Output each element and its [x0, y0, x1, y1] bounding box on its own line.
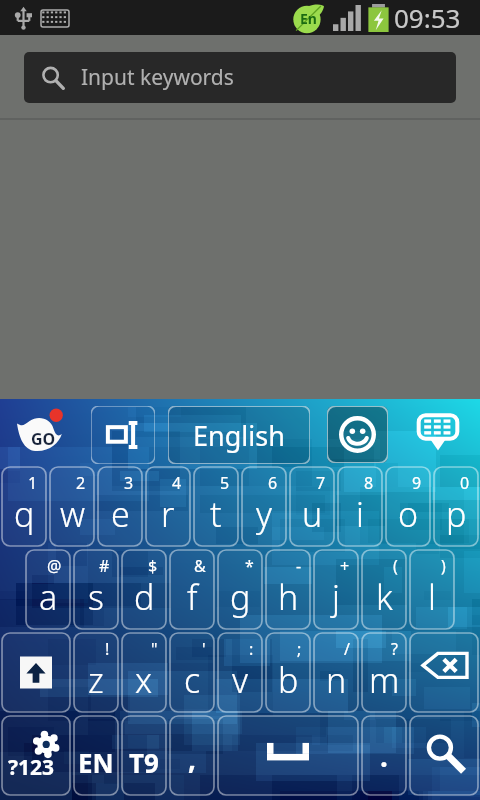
staticText: a — [39, 574, 58, 620]
button[interactable]: English — [168, 406, 310, 464]
button[interactable] — [98, 467, 142, 546]
staticText: : — [249, 638, 254, 660]
button[interactable] — [2, 467, 46, 546]
button[interactable] — [122, 550, 166, 629]
staticText: / — [344, 638, 350, 660]
button[interactable]: Emoji — [327, 406, 388, 463]
staticText: g — [230, 574, 251, 620]
staticText: ) — [441, 555, 446, 577]
staticText: EN — [78, 745, 114, 780]
staticText: c — [184, 657, 201, 703]
staticText: v — [232, 657, 248, 703]
staticText: 7 — [316, 472, 326, 494]
button[interactable] — [386, 467, 430, 546]
staticText: k — [376, 574, 393, 620]
button[interactable] — [26, 550, 70, 629]
button[interactable] — [218, 550, 262, 629]
staticText: # — [99, 555, 110, 577]
staticText: 2 — [76, 472, 86, 494]
button[interactable] — [218, 633, 262, 712]
button[interactable]: Space — [218, 716, 358, 795]
button[interactable] — [314, 550, 358, 629]
button[interactable] — [410, 550, 454, 629]
staticText: 4 — [172, 472, 182, 494]
staticText: * — [245, 555, 254, 577]
staticText: f — [187, 574, 198, 620]
staticText: m — [369, 657, 400, 703]
button[interactable] — [434, 467, 478, 546]
staticText: o — [398, 491, 419, 537]
staticText: t — [210, 491, 222, 537]
staticText: r — [161, 491, 175, 537]
button[interactable] — [170, 550, 214, 629]
button[interactable] — [122, 716, 166, 795]
button[interactable] — [170, 716, 214, 795]
staticText: T9 — [129, 745, 159, 780]
staticText: j — [332, 574, 340, 620]
button[interactable] — [170, 633, 214, 712]
staticText: 9 — [412, 472, 422, 494]
button[interactable] — [290, 467, 334, 546]
staticText: . — [380, 737, 388, 775]
button[interactable] — [314, 633, 358, 712]
button[interactable]: GO Keyboard menu — [10, 407, 80, 457]
staticText: , — [188, 739, 196, 777]
staticText: 09:53 — [394, 0, 461, 35]
staticText: d — [134, 574, 155, 620]
staticText: e — [111, 491, 130, 537]
button[interactable]: Backspace — [410, 633, 478, 712]
button[interactable] — [242, 467, 286, 546]
button[interactable] — [146, 467, 190, 546]
staticText: i — [356, 491, 364, 537]
staticText: 8 — [364, 472, 374, 494]
staticText: En — [300, 9, 317, 28]
button[interactable]: Input keywords — [24, 52, 456, 103]
staticText: q — [14, 491, 35, 537]
staticText: w — [60, 491, 85, 537]
button[interactable] — [362, 633, 406, 712]
staticText: ; — [297, 638, 302, 660]
staticText: ?123 — [8, 753, 55, 782]
staticText: b — [278, 657, 299, 703]
staticText: 6 — [268, 472, 278, 494]
button[interactable] — [266, 550, 310, 629]
staticText: u — [302, 491, 323, 537]
staticText: ! — [105, 638, 110, 660]
staticText: ? — [391, 638, 398, 660]
staticText: l — [428, 574, 436, 620]
button[interactable]: Shift — [2, 633, 70, 712]
staticText: GO — [31, 428, 56, 450]
button[interactable] — [74, 716, 118, 795]
staticText: & — [194, 555, 206, 577]
button[interactable]: Symbols — [2, 716, 70, 795]
staticText: English — [193, 417, 285, 454]
button[interactable]: Input box — [91, 406, 155, 464]
button[interactable] — [194, 467, 238, 546]
staticText: - — [296, 555, 302, 577]
staticText: Input keywords — [81, 63, 234, 92]
staticText: + — [340, 555, 350, 577]
button[interactable] — [122, 633, 166, 712]
staticText: s — [88, 574, 104, 620]
staticText: z — [88, 657, 104, 703]
button[interactable]: Hide keyboard — [408, 407, 468, 457]
button[interactable] — [362, 716, 406, 795]
staticText: 0 — [460, 472, 470, 494]
button[interactable] — [266, 633, 310, 712]
staticText: x — [135, 657, 153, 703]
button[interactable] — [74, 633, 118, 712]
staticText: ' — [202, 638, 206, 660]
button[interactable] — [338, 467, 382, 546]
staticText: y — [256, 491, 272, 537]
staticText: " — [151, 638, 158, 660]
staticText: $ — [148, 555, 158, 577]
button[interactable]: Search — [410, 716, 478, 795]
staticText: n — [326, 657, 347, 703]
button[interactable] — [362, 550, 406, 629]
button[interactable] — [50, 467, 94, 546]
staticText: 1 — [28, 472, 38, 494]
staticText: 5 — [220, 472, 230, 494]
staticText: 3 — [124, 472, 134, 494]
staticText: @ — [47, 555, 62, 577]
button[interactable] — [74, 550, 118, 629]
